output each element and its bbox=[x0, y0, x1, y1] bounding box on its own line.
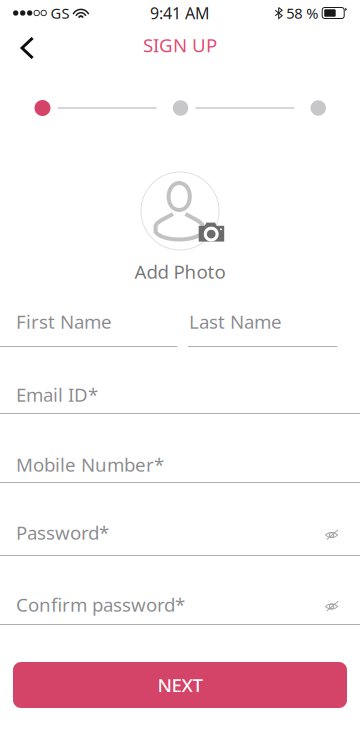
staticText: Email ID* bbox=[16, 382, 98, 407]
staticText: 9:41 AM bbox=[150, 2, 210, 24]
staticText: SIGN UP bbox=[143, 33, 217, 57]
button[interactable]: Back bbox=[0, 23, 50, 67]
staticText: NEXT bbox=[157, 673, 202, 697]
button[interactable]: NEXT bbox=[13, 662, 347, 708]
staticText: GS bbox=[50, 3, 69, 23]
staticText: Last Name bbox=[189, 309, 282, 334]
staticText: Password* bbox=[16, 520, 109, 545]
staticText: Mobile Number* bbox=[16, 452, 164, 477]
button[interactable]: Show confirm password bbox=[325, 600, 341, 612]
button[interactable]: Add Photo bbox=[134, 172, 225, 284]
button[interactable]: Show password bbox=[325, 529, 341, 541]
staticText: First Name bbox=[16, 309, 112, 334]
staticText: Confirm password* bbox=[16, 592, 185, 617]
staticText: Add Photo bbox=[134, 259, 225, 284]
staticText: 58 % bbox=[286, 3, 318, 23]
